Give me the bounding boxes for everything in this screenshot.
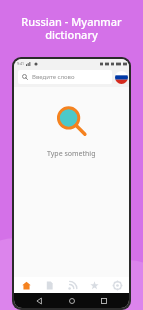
staticText: Введите слово [32, 73, 75, 81]
button[interactable]: Recents [96, 293, 112, 308]
staticText: Type somethig [47, 149, 96, 159]
button[interactable]: Dictionary [38, 277, 60, 293]
button[interactable]: Введите слово [18, 70, 112, 84]
staticText: 9:41 [17, 61, 24, 66]
button[interactable]: Feed [61, 277, 83, 293]
button[interactable]: Back [31, 293, 47, 308]
button[interactable]: Home [15, 277, 37, 293]
staticText: Russian - Myanmar dictionary [21, 14, 122, 42]
button[interactable]: Select language: Russian [115, 71, 128, 84]
button[interactable]: Home [64, 293, 80, 308]
button[interactable]: Settings [106, 277, 128, 293]
button[interactable]: Favorites [83, 277, 105, 293]
